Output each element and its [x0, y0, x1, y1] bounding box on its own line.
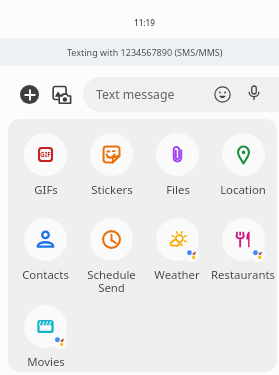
button[interactable]: Contacts	[12, 218, 78, 298]
staticText: Stickers	[91, 182, 133, 198]
button[interactable]: Location	[210, 133, 276, 213]
staticText: Texting with 1234567890 (SMS/MMS)	[67, 46, 223, 58]
staticText: Location	[220, 182, 266, 198]
button[interactable]: Movies	[12, 305, 78, 375]
button[interactable]: GIF	[12, 133, 78, 213]
button[interactable]: Schedule Send	[78, 218, 144, 298]
staticText: GIF	[40, 150, 51, 159]
staticText: Movies	[27, 354, 65, 370]
staticText: Schedule Send	[87, 267, 136, 295]
button[interactable]: Voice message	[243, 82, 265, 104]
button[interactable]: Files	[144, 133, 210, 213]
button[interactable]: Stickers	[78, 133, 144, 213]
button[interactable]: Add attachment	[20, 85, 39, 104]
button[interactable]: Emoji	[211, 83, 233, 105]
button[interactable]: Weather	[144, 218, 210, 298]
button[interactable]: Restaurants	[210, 218, 276, 298]
staticText: 11:19	[134, 17, 155, 28]
staticText: Text message	[96, 86, 175, 103]
staticText: GIFs	[34, 182, 58, 198]
staticText: Contacts	[22, 267, 69, 283]
staticText: Files	[166, 182, 190, 198]
staticText: Weather	[154, 267, 200, 283]
button[interactable]: Choose image	[50, 83, 73, 106]
staticText: Restaurants	[211, 267, 275, 283]
button[interactable]: Text message	[83, 77, 279, 112]
